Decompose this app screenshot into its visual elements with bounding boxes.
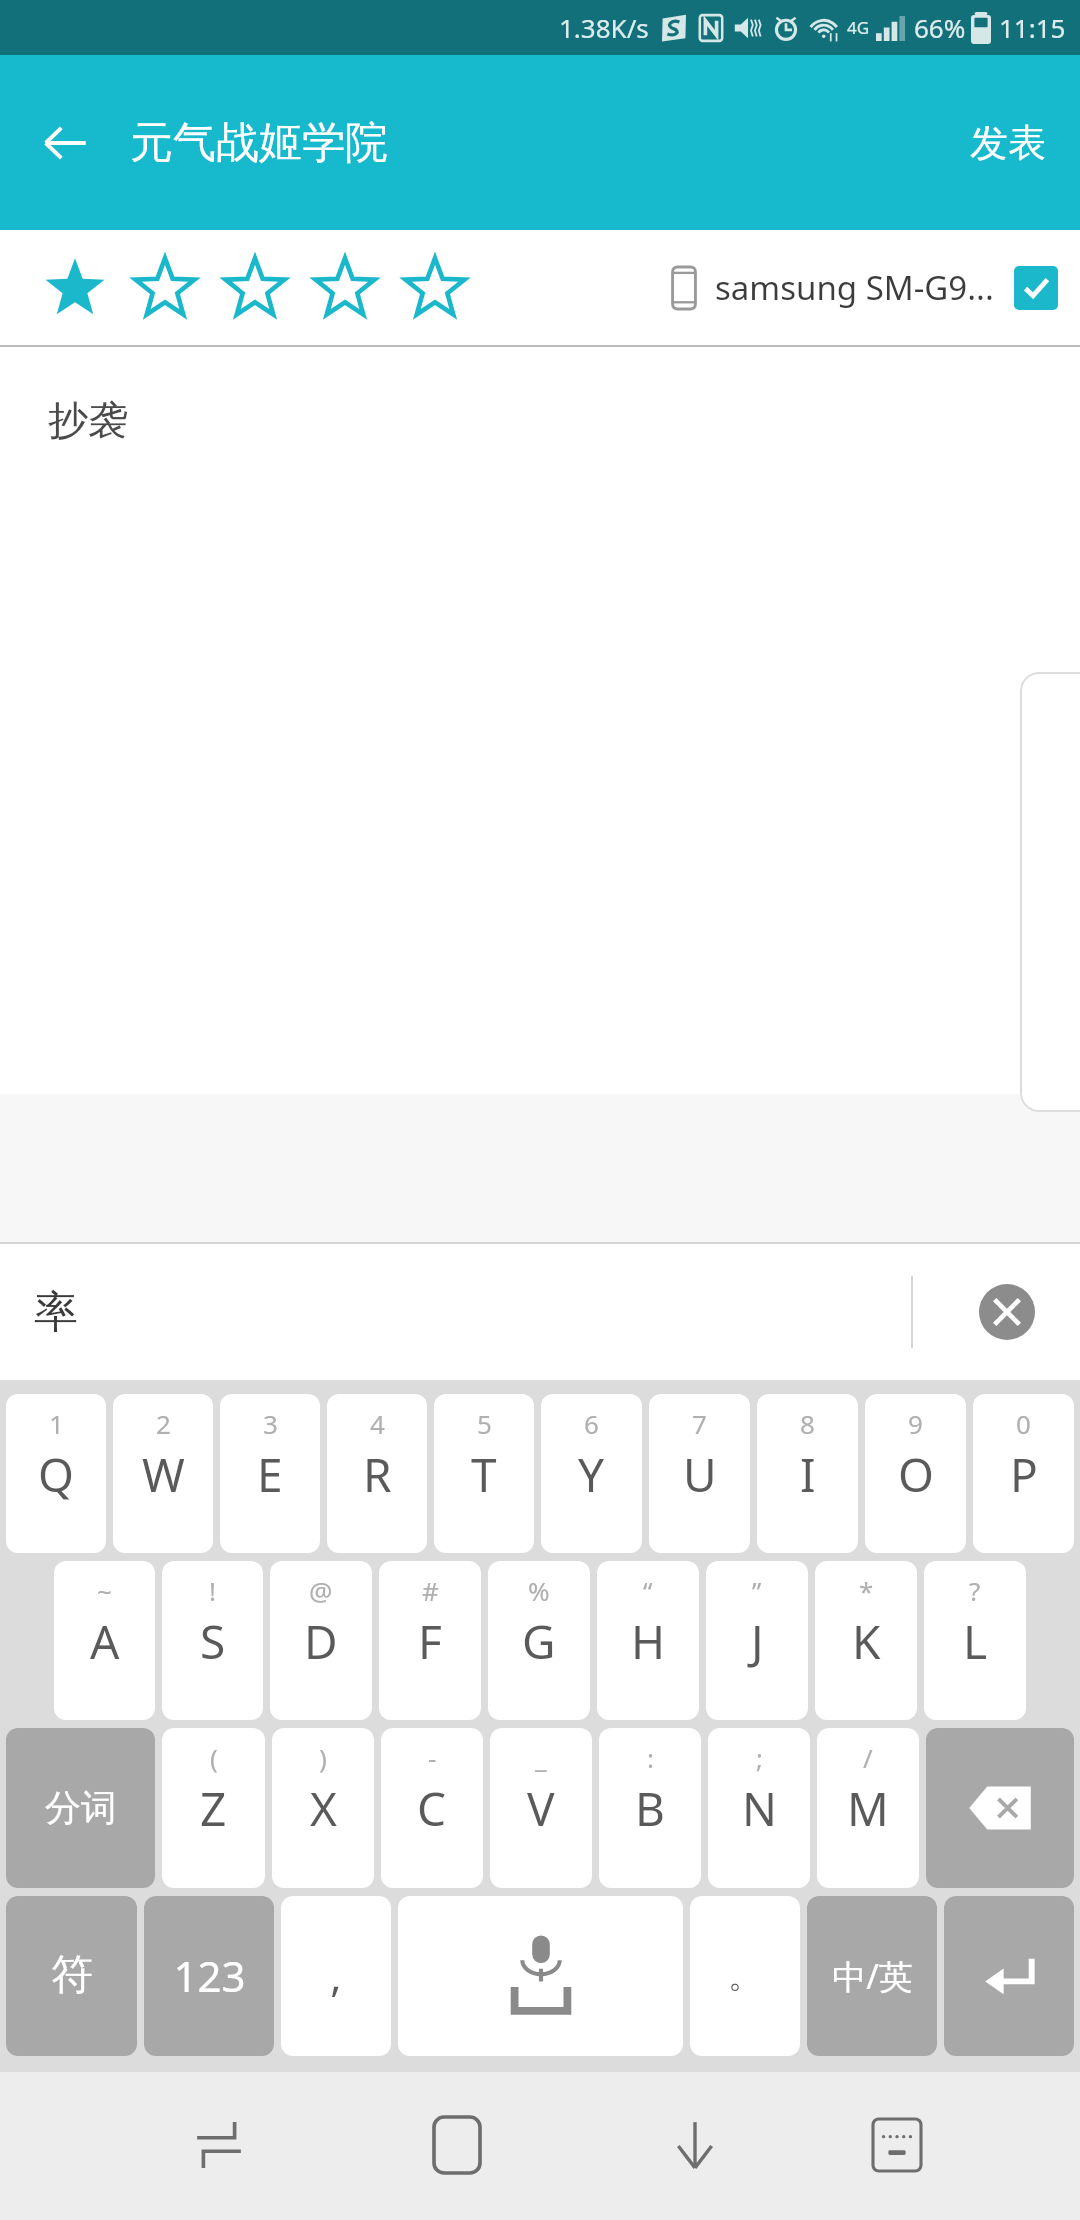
button[interactable]: 符	[6, 1896, 137, 2056]
button[interactable]: *	[815, 1561, 917, 1720]
staticText: M	[847, 1777, 889, 1840]
button[interactable]: Recent apps	[100, 2070, 338, 2220]
button[interactable]: 发表	[958, 109, 1058, 177]
staticText: T	[471, 1443, 497, 1506]
staticText: 发表	[970, 119, 1046, 167]
staticText: @	[309, 1573, 333, 1608]
staticText: X	[310, 1777, 337, 1840]
staticText: 11:15	[999, 10, 1066, 45]
button[interactable]: 7	[649, 1394, 750, 1553]
staticText: L	[963, 1610, 988, 1673]
button[interactable]: @	[270, 1561, 372, 1720]
staticText: D	[304, 1610, 338, 1673]
button[interactable]: (	[162, 1728, 265, 1888]
staticText: 元气战姬学院	[130, 116, 388, 170]
staticText: 3	[263, 1406, 278, 1441]
staticText: %	[528, 1573, 550, 1608]
staticText: H	[631, 1610, 666, 1673]
staticText: 123	[173, 1947, 246, 2004]
staticText: Q	[38, 1443, 74, 1506]
button[interactable]: ~	[54, 1561, 155, 1720]
button[interactable]: 率	[20, 1271, 92, 1354]
button[interactable]: 3	[220, 1394, 320, 1553]
button[interactable]: 分词	[6, 1728, 155, 1888]
button[interactable]: Switch keyboard	[814, 2070, 980, 2220]
staticText: 分词	[45, 1785, 117, 1830]
staticText: J	[751, 1610, 764, 1673]
button[interactable]: Enter	[944, 1896, 1074, 2056]
staticText: 5	[477, 1406, 492, 1441]
staticText: 9	[908, 1406, 923, 1441]
button[interactable]: Backspace	[926, 1728, 1074, 1888]
staticText: /	[863, 1740, 873, 1775]
button[interactable]: 6	[541, 1394, 642, 1553]
button[interactable]: 2	[113, 1394, 213, 1553]
button[interactable]: ,	[281, 1896, 391, 2056]
staticText: V	[527, 1777, 555, 1840]
staticText: P	[1010, 1443, 1038, 1506]
button[interactable]: Home	[338, 2070, 576, 2220]
staticText: 4	[370, 1406, 385, 1441]
staticText: S	[200, 1610, 226, 1673]
staticText: C	[417, 1777, 447, 1840]
button[interactable]: !	[162, 1561, 263, 1720]
staticText: ;	[756, 1740, 763, 1775]
staticText: I	[800, 1443, 816, 1506]
staticText: _	[535, 1740, 547, 1775]
button[interactable]: 8	[757, 1394, 858, 1553]
staticText: #	[422, 1573, 439, 1608]
staticText: 率	[34, 1285, 78, 1340]
staticText: G	[522, 1610, 556, 1673]
staticText: “	[643, 1573, 653, 1608]
staticText: 。	[728, 1954, 762, 1997]
staticText: 抄袭	[48, 395, 128, 445]
button[interactable]: %	[488, 1561, 590, 1720]
staticText: ~	[97, 1573, 112, 1608]
button[interactable]: Close keyboard panel	[964, 1269, 1050, 1355]
staticText: N	[742, 1777, 777, 1840]
staticText: *	[859, 1573, 874, 1608]
staticText: K	[852, 1610, 881, 1673]
button[interactable]: 。	[690, 1896, 800, 2056]
button[interactable]: 1	[6, 1394, 106, 1553]
staticText: !	[209, 1573, 216, 1608]
button[interactable]: Back	[20, 98, 110, 188]
button[interactable]: Rate 3 stars	[210, 243, 300, 333]
staticText: 符	[51, 1949, 93, 2002]
button[interactable]: _	[490, 1728, 592, 1888]
button[interactable]: 0	[973, 1394, 1074, 1553]
staticText: ”	[752, 1573, 762, 1608]
button[interactable]: )	[272, 1728, 374, 1888]
staticText: 4G	[847, 16, 870, 39]
staticText: (	[210, 1740, 218, 1775]
button[interactable]: 123	[144, 1896, 274, 2056]
staticText: A	[90, 1610, 120, 1673]
button[interactable]: 中/英	[807, 1896, 937, 2056]
button[interactable]: :	[599, 1728, 701, 1888]
button[interactable]: -	[381, 1728, 483, 1888]
button[interactable]: ;	[708, 1728, 810, 1888]
button[interactable]: Rate 4 stars	[300, 243, 390, 333]
button[interactable]: Rate 1 stars	[30, 243, 120, 333]
button[interactable]: 抄袭	[0, 347, 1080, 1094]
staticText: E	[257, 1443, 283, 1506]
staticText: 7	[692, 1406, 707, 1441]
button[interactable]: Hide keyboard	[576, 2070, 814, 2220]
button[interactable]: Rate 2 stars	[120, 243, 210, 333]
button[interactable]: 5	[434, 1394, 534, 1553]
button[interactable]: samsung SM-G9...	[671, 265, 1058, 310]
button[interactable]: Rate 5 stars	[390, 243, 480, 333]
staticText: 1.38K/s	[559, 10, 649, 45]
button[interactable]: ?	[924, 1561, 1026, 1720]
button[interactable]: 4	[327, 1394, 427, 1553]
button[interactable]: #	[379, 1561, 481, 1720]
staticText: 0	[1016, 1406, 1031, 1441]
button[interactable]: /	[817, 1728, 919, 1888]
staticText: U	[683, 1443, 717, 1506]
staticText: -	[428, 1740, 437, 1775]
button[interactable]: Space, voice input	[398, 1896, 683, 2056]
button[interactable]: ”	[706, 1561, 808, 1720]
button[interactable]: “	[597, 1561, 699, 1720]
staticText: samsung SM-G9...	[715, 265, 994, 310]
button[interactable]: 9	[865, 1394, 966, 1553]
